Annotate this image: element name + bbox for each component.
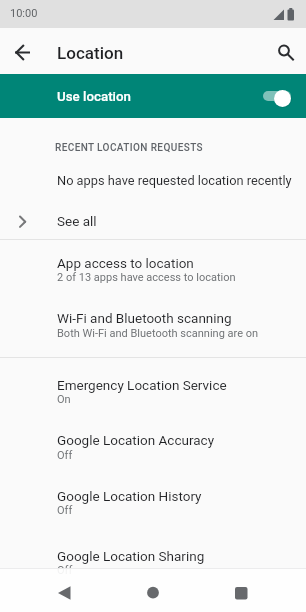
staticText: On — [57, 393, 71, 406]
button[interactable]: Use location — [0, 74, 306, 118]
staticText: Both Wi-Fi and Bluetooth scanning are on — [57, 327, 259, 340]
button[interactable] — [133, 577, 173, 609]
staticText: Off — [57, 449, 73, 462]
staticText: Emergency Location Service — [57, 377, 227, 393]
staticText: Off — [57, 564, 73, 577]
button[interactable]: App access to location — [0, 240, 306, 295]
staticText: 2 of 13 apps have access to location — [57, 271, 236, 284]
staticText: RECENT LOCATION REQUESTS — [55, 142, 203, 154]
button[interactable] — [4, 35, 38, 69]
staticText: Off — [57, 504, 73, 517]
button[interactable] — [44, 577, 84, 609]
staticText: 10:00 — [10, 7, 38, 20]
button[interactable]: See all — [0, 203, 306, 234]
staticText: Google Location History — [57, 488, 202, 504]
staticText: Google Location Sharing — [57, 548, 205, 564]
staticText: Google Location Accuracy — [57, 432, 215, 448]
staticText: See all — [57, 213, 97, 229]
button[interactable] — [221, 577, 261, 609]
staticText: No apps have requested location recently — [57, 173, 292, 188]
button[interactable]: Google Location History — [0, 468, 306, 524]
button[interactable] — [268, 35, 302, 69]
staticText: Use location — [57, 89, 131, 105]
button[interactable]: Wi-Fi and Bluetooth scanning — [0, 295, 306, 357]
staticText: Wi-Fi and Bluetooth scanning — [57, 310, 232, 326]
button[interactable]: Google Location Accuracy — [0, 413, 306, 468]
button[interactable]: No apps have requested location recently — [0, 158, 306, 203]
button[interactable]: Google Location Sharing — [0, 524, 306, 580]
button[interactable]: Emergency Location Service — [0, 358, 306, 413]
staticText: App access to location — [57, 255, 194, 271]
staticText: Location — [57, 43, 124, 63]
